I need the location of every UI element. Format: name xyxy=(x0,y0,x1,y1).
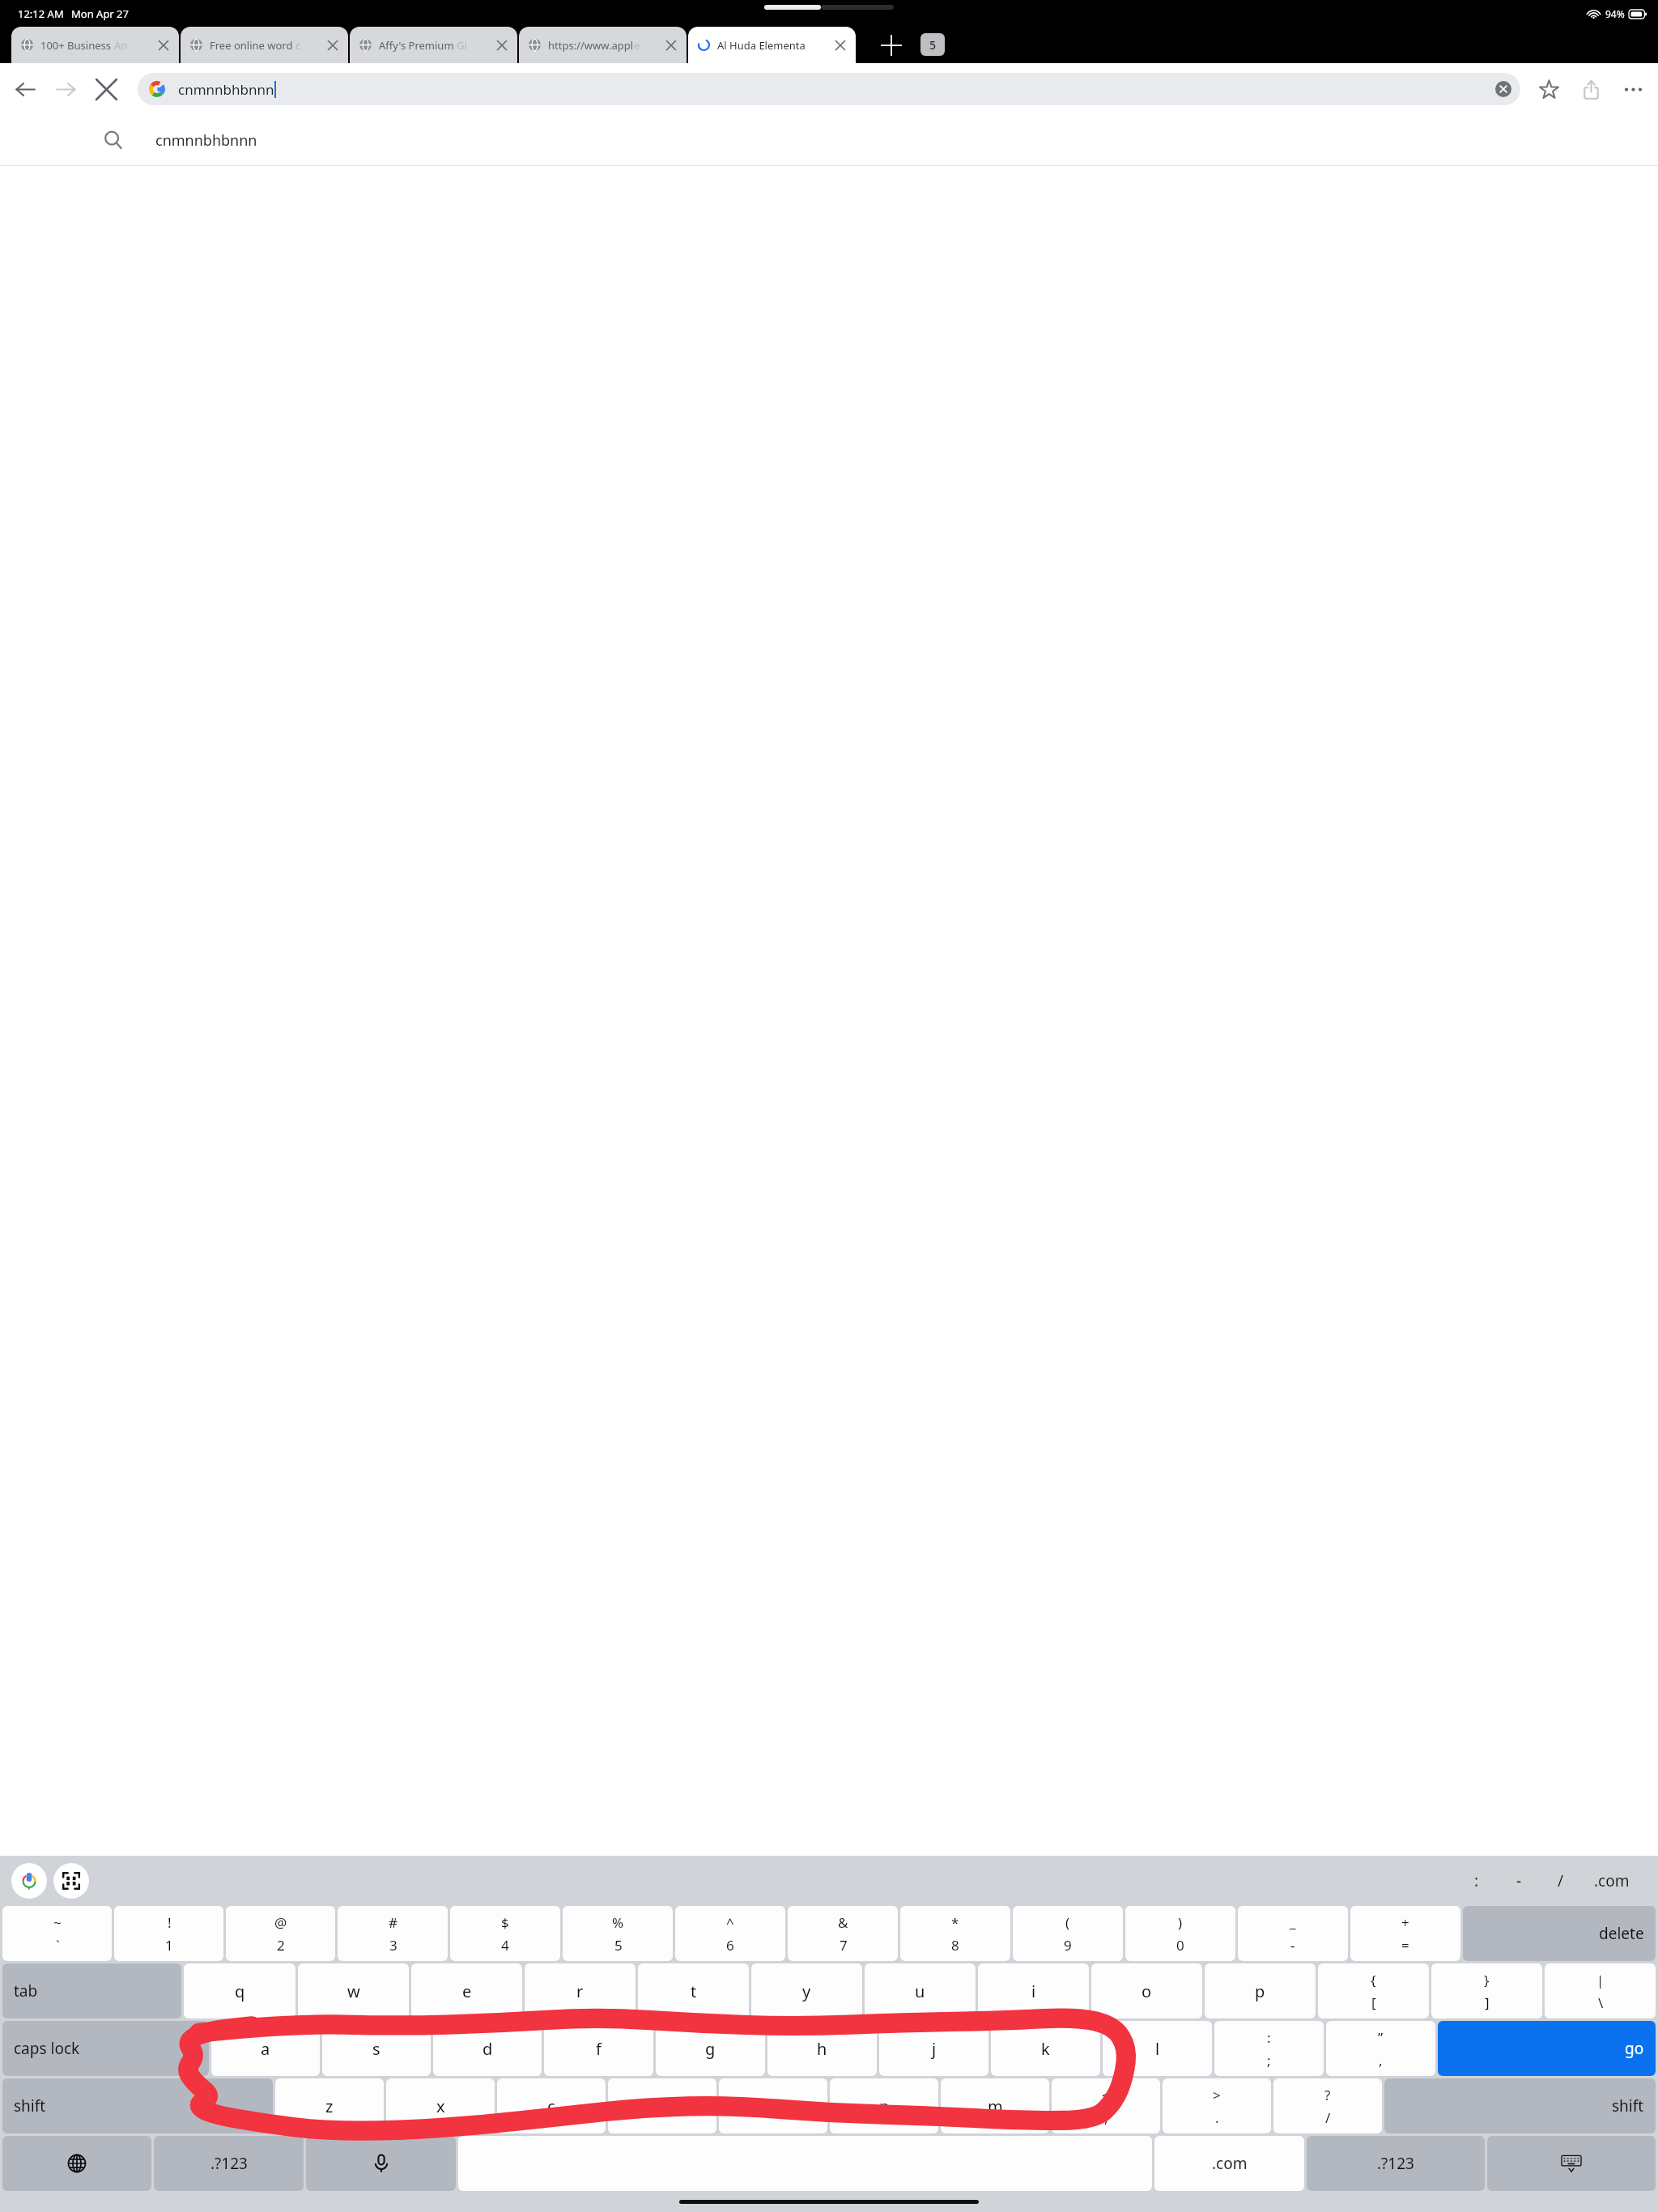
staticText: shift xyxy=(14,2095,46,2116)
staticText: _ xyxy=(1290,1913,1296,1932)
button[interactable]: _ xyxy=(1238,1906,1348,1961)
staticText: , xyxy=(1379,2051,1383,2069)
button[interactable]: Stop loading xyxy=(92,75,120,103)
button[interactable]: t xyxy=(638,1963,749,2018)
button[interactable]: Hide keyboard xyxy=(1487,2136,1656,2191)
staticText: - xyxy=(1516,1870,1522,1891)
button[interactable]: z xyxy=(275,2078,384,2133)
button[interactable]: Scan xyxy=(53,1863,89,1899)
staticText: ” xyxy=(1378,2028,1384,2047)
button[interactable]: a xyxy=(211,2021,320,2076)
button[interactable]: 100+ Business xyxy=(11,27,179,63)
button[interactable]: go xyxy=(1438,2021,1656,2076)
button[interactable]: r xyxy=(525,1963,636,2018)
button[interactable]: $ xyxy=(450,1906,560,1961)
button[interactable]: ) xyxy=(1125,1906,1235,1961)
button[interactable]: h xyxy=(767,2021,877,2076)
button[interactable]: | xyxy=(1545,1963,1656,2018)
button[interactable]: q xyxy=(184,1963,295,2018)
button[interactable]: } xyxy=(1431,1963,1542,2018)
button[interactable]: 5 xyxy=(920,33,945,56)
button[interactable]: * xyxy=(900,1906,1010,1961)
button[interactable]: Forward xyxy=(52,75,79,103)
button[interactable]: n xyxy=(830,2078,938,2133)
button[interactable]: l xyxy=(1103,2021,1212,2076)
button[interactable]: .?123 xyxy=(154,2136,304,2191)
button[interactable]: Close tab xyxy=(831,36,849,54)
button[interactable]: ~ xyxy=(2,1906,112,1961)
button[interactable]: Close tab xyxy=(324,36,342,54)
button[interactable]: tab xyxy=(2,1963,181,2018)
button[interactable]: j xyxy=(879,2021,988,2076)
button[interactable]: w xyxy=(298,1963,409,2018)
button[interactable]: https://www.appl xyxy=(519,27,687,63)
button[interactable]: & xyxy=(788,1906,898,1961)
button[interactable]: delete xyxy=(1463,1906,1656,1961)
staticText: delete xyxy=(1599,1923,1644,1944)
button[interactable]: .?123 xyxy=(1307,2136,1485,2191)
button[interactable]: ^ xyxy=(675,1906,785,1961)
button[interactable]: caps lock xyxy=(2,2021,209,2076)
staticText: [ xyxy=(1371,1993,1376,2012)
button[interactable]: / xyxy=(1540,1863,1582,1899)
button[interactable]: Clear xyxy=(1490,75,1517,103)
button[interactable]: < xyxy=(1052,2078,1160,2133)
staticText: ( xyxy=(1065,1913,1070,1932)
button[interactable]: : xyxy=(1456,1863,1498,1899)
staticText: 5 xyxy=(614,1936,623,1955)
button[interactable]: k xyxy=(991,2021,1100,2076)
button[interactable]: y xyxy=(751,1963,862,2018)
button[interactable]: @ xyxy=(226,1906,335,1961)
staticText: 2 xyxy=(277,1936,285,1955)
button[interactable]: u xyxy=(865,1963,976,2018)
button[interactable]: Close tab xyxy=(493,36,511,54)
button[interactable]: + xyxy=(1350,1906,1460,1961)
button[interactable]: Close tab xyxy=(662,36,680,54)
button[interactable]: > xyxy=(1163,2078,1271,2133)
button[interactable]: Al Huda Elementa xyxy=(688,27,856,63)
button[interactable]: ! xyxy=(114,1906,223,1961)
button[interactable]: # xyxy=(338,1906,448,1961)
button[interactable]: % xyxy=(563,1906,673,1961)
button[interactable]: e xyxy=(411,1963,522,2018)
button[interactable]: v xyxy=(608,2078,716,2133)
staticText: v xyxy=(658,2095,667,2117)
button[interactable]: b xyxy=(719,2078,827,2133)
button[interactable]: .com xyxy=(1582,1863,1642,1899)
button[interactable]: Share xyxy=(1577,75,1605,103)
button[interactable]: ” xyxy=(1326,2021,1435,2076)
button[interactable]: Voice search xyxy=(11,1863,47,1899)
button[interactable]: Bookmark xyxy=(1535,75,1562,103)
button[interactable]: Back xyxy=(11,75,39,103)
button[interactable]: { xyxy=(1318,1963,1429,2018)
button[interactable]: i xyxy=(978,1963,1089,2018)
button[interactable]: - xyxy=(1498,1863,1540,1899)
button[interactable]: Free online word xyxy=(181,27,348,63)
button[interactable]: d xyxy=(433,2021,542,2076)
button[interactable]: New tab xyxy=(867,27,916,63)
button[interactable]: More options xyxy=(1619,75,1647,103)
button[interactable]: Voice input xyxy=(306,2136,456,2191)
button[interactable]: .com xyxy=(1154,2136,1304,2191)
button[interactable]: Change keyboard xyxy=(2,2136,151,2191)
button[interactable]: o xyxy=(1091,1963,1202,2018)
button[interactable]: p xyxy=(1205,1963,1316,2018)
button[interactable]: ( xyxy=(1013,1906,1123,1961)
button[interactable]: : xyxy=(1214,2021,1324,2076)
button[interactable]: x xyxy=(386,2078,495,2133)
button[interactable]: g xyxy=(656,2021,765,2076)
button[interactable]: m xyxy=(941,2078,1049,2133)
button[interactable]: Affy's Premium xyxy=(350,27,517,63)
button[interactable]: c xyxy=(497,2078,606,2133)
button[interactable]: cnmnnbhbnnn xyxy=(138,73,1520,105)
button[interactable]: ? xyxy=(1273,2078,1382,2133)
button[interactable]: cnmnnbhbnnn xyxy=(0,115,1658,165)
staticText: / xyxy=(1558,1870,1564,1891)
button[interactable]: shift xyxy=(1384,2078,1656,2133)
button[interactable]: s xyxy=(322,2021,431,2076)
button[interactable]: Close tab xyxy=(155,36,172,54)
staticText: 4 xyxy=(501,1936,509,1955)
button[interactable]: f xyxy=(544,2021,653,2076)
button[interactable]: shift xyxy=(2,2078,273,2133)
